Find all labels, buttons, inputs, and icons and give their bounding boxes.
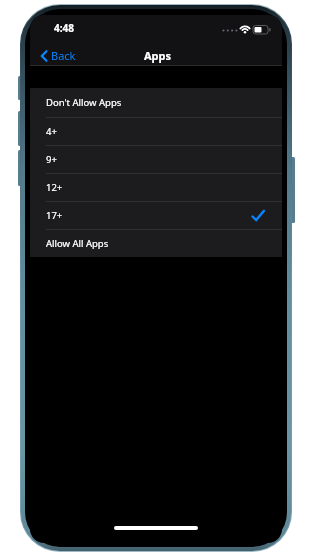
button[interactable]: 4+ (30, 117, 282, 145)
staticText: Don't Allow Apps (46, 96, 122, 109)
button[interactable]: 12+ (30, 173, 282, 201)
button[interactable]: Allow All Apps (30, 229, 282, 257)
staticText: Back (51, 48, 76, 63)
button[interactable]: 9+ (30, 145, 282, 173)
button[interactable]: Back (40, 48, 76, 63)
staticText: 4+ (46, 125, 57, 138)
staticText: 4:48 (54, 21, 74, 35)
button[interactable]: 17+ (30, 201, 282, 229)
staticText: 9+ (46, 153, 57, 166)
staticText: 17+ (46, 209, 63, 222)
staticText: 12+ (46, 181, 63, 194)
button[interactable]: Don't Allow Apps (30, 88, 282, 117)
staticText: Allow All Apps (46, 237, 109, 250)
staticText: Apps (144, 48, 172, 63)
